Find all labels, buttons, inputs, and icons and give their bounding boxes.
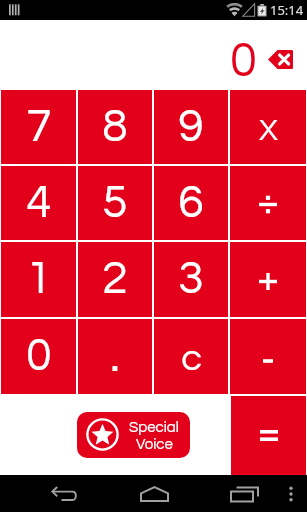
button[interactable]: Minus — [230, 319, 306, 394]
button[interactable]: 8 — [78, 90, 152, 164]
staticText: 7 — [26, 103, 52, 150]
staticText: 5 — [102, 179, 128, 226]
button[interactable]: 5 — [78, 166, 152, 240]
staticText: 15:14 — [270, 1, 304, 19]
button[interactable]: More options — [279, 481, 303, 507]
staticText: 2 — [102, 255, 128, 302]
other: Divide — [253, 188, 283, 218]
button[interactable]: 0 — [1, 319, 76, 394]
staticText: 9 — [178, 103, 204, 150]
staticText: c — [181, 339, 202, 378]
staticText: 1 — [26, 255, 52, 302]
button[interactable]: 2 — [78, 242, 152, 317]
staticText: Voice — [136, 437, 173, 452]
staticText: Special — [129, 420, 179, 435]
button[interactable]: Divide — [230, 166, 306, 240]
button[interactable]: Back — [40, 481, 88, 507]
button[interactable]: c — [154, 319, 228, 394]
staticText: 8 — [102, 103, 128, 150]
button[interactable]: Home — [130, 481, 178, 507]
staticText: . — [110, 333, 120, 380]
button[interactable]: Backspace — [262, 45, 298, 73]
button[interactable]: Equals — [231, 396, 306, 475]
button[interactable]: 3 — [154, 242, 228, 317]
button[interactable]: 7 — [1, 90, 76, 164]
button[interactable]: 1 — [1, 242, 76, 317]
button[interactable]: 6 — [154, 166, 228, 240]
other: Plus — [253, 265, 283, 295]
button[interactable]: X — [230, 90, 306, 164]
button[interactable]: Recent apps — [220, 481, 268, 507]
button[interactable]: 4 — [1, 166, 76, 240]
staticText: 6 — [178, 179, 204, 226]
staticText: X — [259, 115, 278, 146]
button[interactable]: . — [78, 319, 152, 394]
staticText: 4 — [26, 179, 52, 226]
button[interactable]: 9 — [154, 90, 228, 164]
button[interactable]: Display — [0, 20, 307, 90]
button[interactable]: Plus — [230, 242, 306, 317]
staticText: 0 — [26, 332, 52, 379]
staticText: 3 — [178, 255, 204, 302]
staticText: 0 — [230, 36, 257, 86]
button[interactable]: Special — [77, 412, 190, 458]
other: Minus — [253, 342, 283, 372]
